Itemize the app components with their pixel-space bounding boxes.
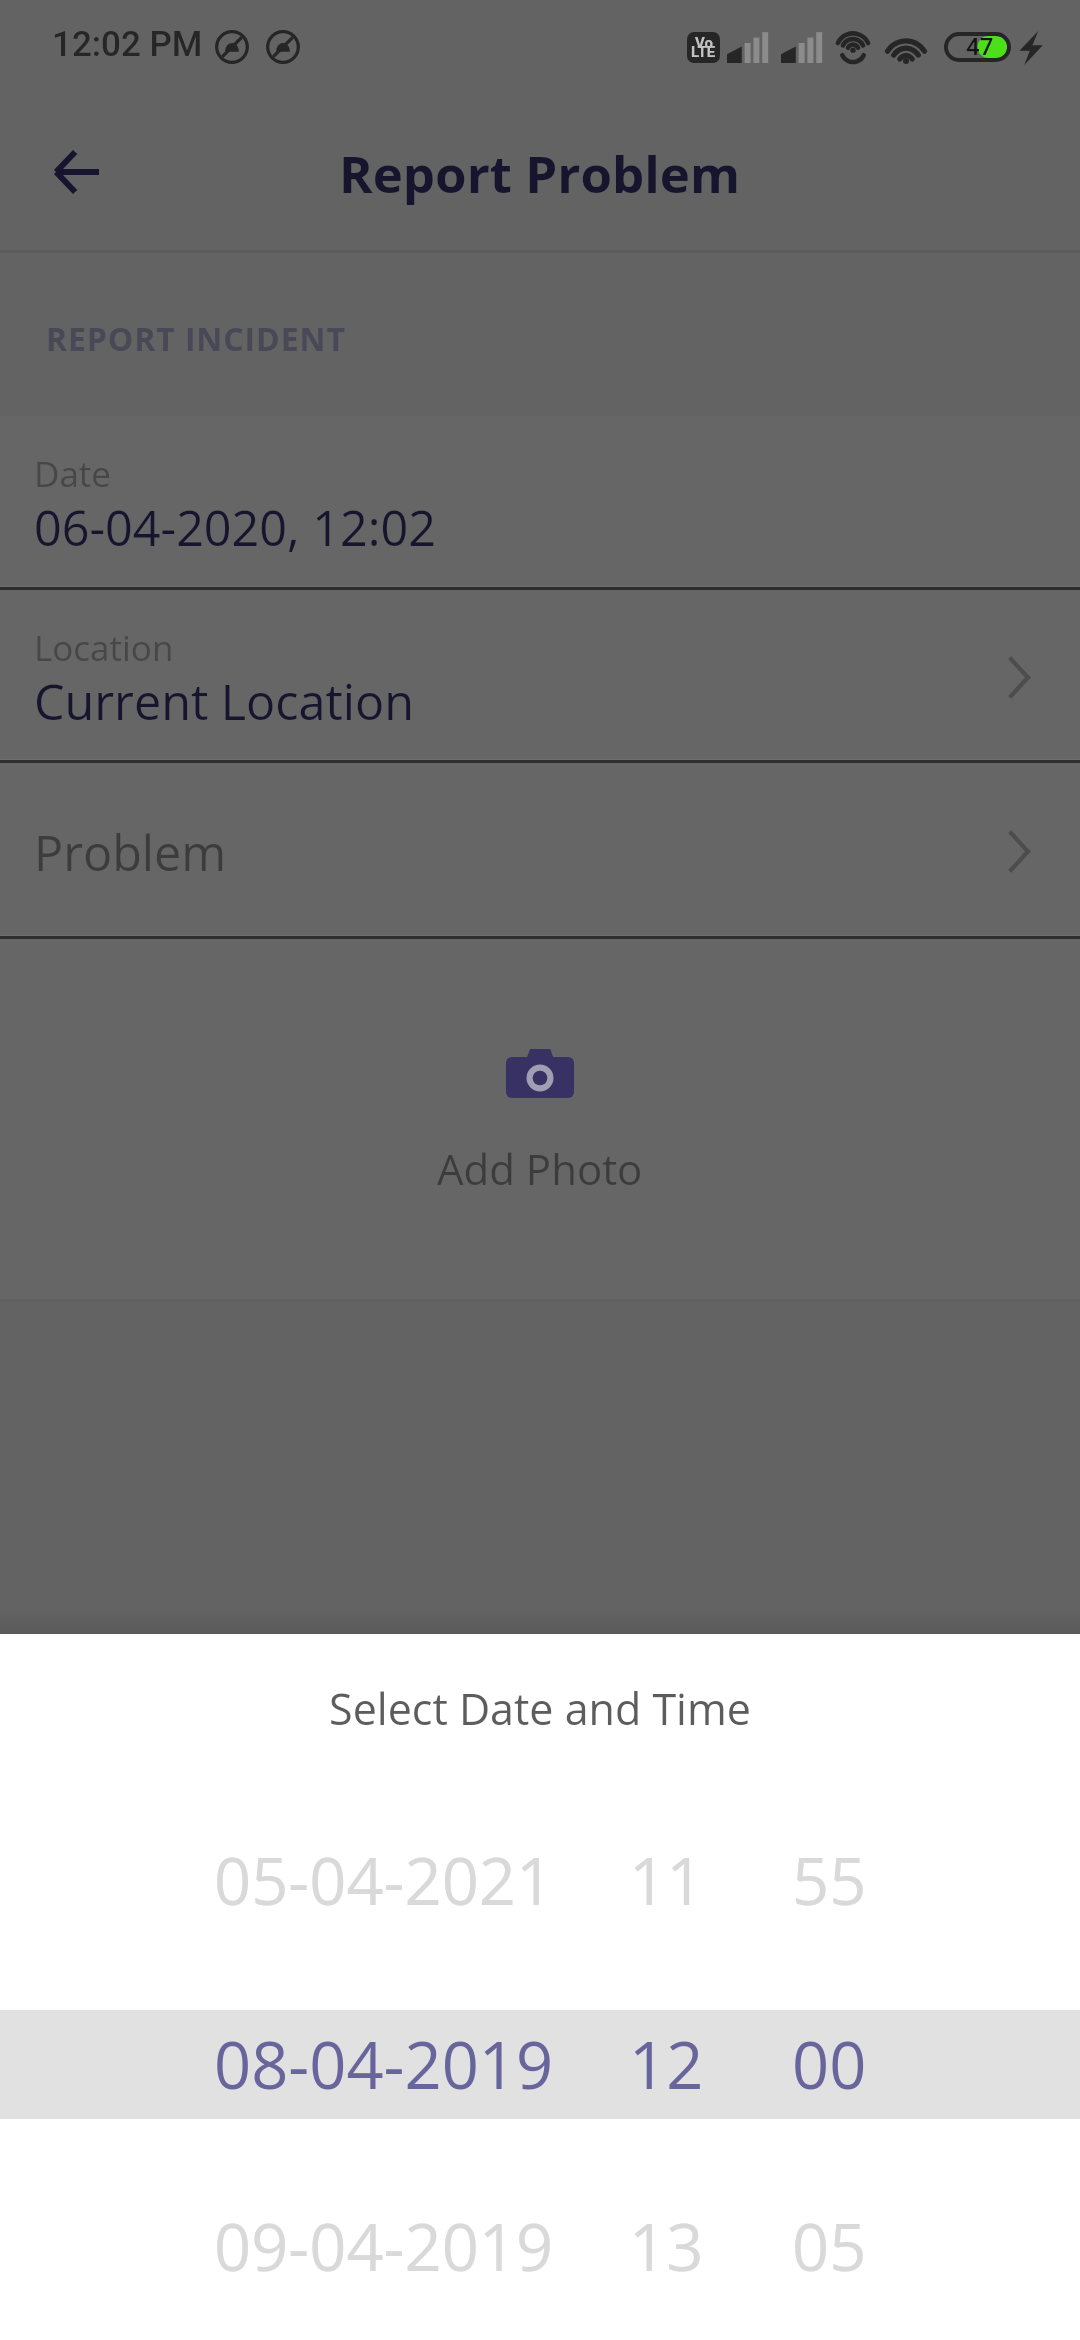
staticText: Current Location <box>34 668 414 734</box>
staticText: 12:02 PM <box>52 24 203 65</box>
button[interactable]: Add Photo <box>437 1048 643 1197</box>
staticText: Location <box>34 624 174 672</box>
staticText: LTE <box>691 43 716 61</box>
staticText: 47 <box>966 33 994 61</box>
button[interactable]: Back <box>24 120 128 224</box>
staticText: Date <box>34 450 111 498</box>
staticText: 11 <box>629 1836 704 1925</box>
button[interactable]: 05-04-2021 <box>0 1826 1080 1935</box>
staticText: Add Photo <box>437 1140 643 1197</box>
staticText: 09-04-2019 <box>214 2202 554 2291</box>
staticText: 05-04-2021 <box>214 1836 554 1925</box>
staticText: 55 <box>792 1836 867 1925</box>
staticText: Vo <box>695 34 713 52</box>
button[interactable]: 08-04-2019 <box>0 2010 1080 2119</box>
staticText: Report Problem <box>339 138 741 207</box>
button[interactable]: Location <box>0 590 1080 759</box>
button[interactable]: 09-04-2019 <box>0 2192 1080 2301</box>
staticText: REPORT INCIDENT <box>46 317 346 361</box>
other: Open <box>984 816 1054 886</box>
staticText: 12 <box>629 2020 704 2109</box>
staticText: 06-04-2020, 12:02 <box>34 494 436 560</box>
staticText: Problem <box>34 819 227 885</box>
staticText: 08-04-2019 <box>214 2020 554 2109</box>
staticText: Select Date and Time <box>0 1679 1080 1738</box>
other: Open <box>984 642 1054 712</box>
button[interactable]: Problem <box>0 763 1080 935</box>
staticText: 00 <box>792 2020 867 2109</box>
staticText: 05 <box>792 2202 867 2291</box>
button[interactable]: Date <box>0 416 1080 586</box>
staticText: 13 <box>629 2202 704 2291</box>
